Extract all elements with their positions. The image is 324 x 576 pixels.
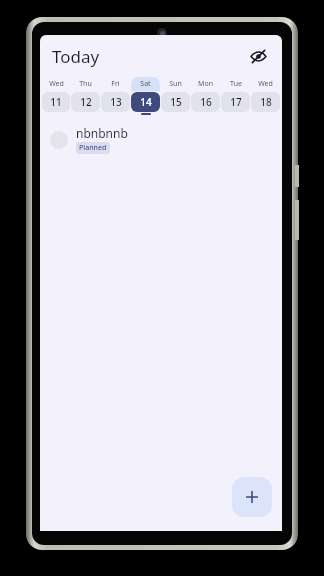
staticText: 11	[50, 95, 62, 109]
staticText: Sat	[140, 79, 151, 89]
staticText: Planned	[79, 143, 107, 153]
staticText: Tue	[230, 79, 242, 89]
button[interactable]: Thu	[71, 77, 100, 115]
button[interactable]: Wed	[251, 77, 280, 115]
staticText: Wed	[258, 79, 273, 89]
button[interactable]: Tue	[221, 77, 250, 115]
staticText: 15	[170, 95, 182, 109]
staticText: Sun	[169, 79, 182, 89]
staticText: 12	[80, 95, 92, 109]
button[interactable]: Add task	[232, 477, 272, 517]
button[interactable]: Mon	[191, 77, 220, 115]
staticText: Today	[52, 45, 100, 68]
staticText: 17	[230, 95, 242, 109]
button[interactable]: Sun	[161, 77, 190, 115]
staticText: 18	[260, 95, 272, 109]
button[interactable]: nbnbnnb	[40, 121, 282, 158]
staticText: 13	[110, 95, 122, 109]
button[interactable]: Wed	[42, 77, 70, 115]
button[interactable]: Hide completed	[242, 40, 274, 72]
staticText: 16	[200, 95, 212, 109]
button[interactable]: Sat	[131, 77, 160, 115]
staticText: 14	[140, 95, 152, 109]
staticText: Wed	[49, 79, 64, 89]
staticText: Thu	[79, 79, 92, 89]
staticText: Mon	[198, 79, 213, 89]
staticText: nbnbnnb	[76, 125, 128, 141]
staticText: Fri	[111, 79, 120, 89]
button[interactable]: Fri	[101, 77, 130, 115]
